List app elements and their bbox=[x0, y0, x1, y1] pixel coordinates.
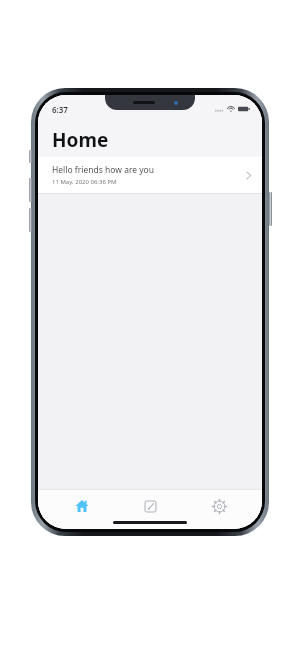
button[interactable]: Home bbox=[57, 495, 107, 517]
staticText: 6:37 bbox=[52, 104, 68, 115]
staticText: Hello friends how are you bbox=[52, 164, 154, 176]
button[interactable]: Hello friends how are you bbox=[38, 157, 262, 193]
button[interactable]: Compose bbox=[125, 495, 175, 517]
staticText: Home bbox=[52, 127, 109, 153]
staticText: 11 May, 2020 06:36 PM bbox=[52, 178, 117, 186]
button[interactable]: Settings bbox=[194, 495, 244, 517]
